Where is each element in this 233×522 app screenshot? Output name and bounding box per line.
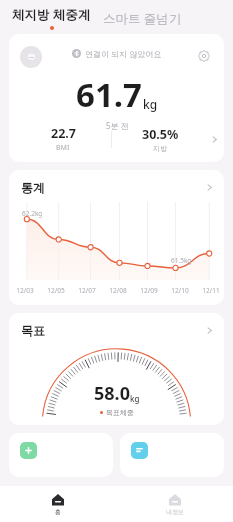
staticText: 22.7 xyxy=(51,125,76,142)
button[interactable]: Profile xyxy=(20,46,42,68)
staticText: 목표 xyxy=(21,323,45,338)
staticText: 12/07 xyxy=(78,286,96,295)
staticText: 12/10 xyxy=(171,286,189,295)
staticText: 연결이 되지 않았어요 xyxy=(85,48,162,59)
button[interactable]: 22.7 xyxy=(15,125,111,153)
staticText: 12/03 xyxy=(16,286,34,295)
staticText: 30.5% xyxy=(142,126,179,143)
button[interactable]: Settings xyxy=(194,46,214,66)
button[interactable]: Profile xyxy=(9,34,224,162)
staticText: BMI xyxy=(56,143,70,153)
button[interactable]: 체지방 체중계 xyxy=(12,6,91,23)
staticText: 61.5kg xyxy=(171,256,192,265)
staticText: 5분 전 xyxy=(106,120,129,131)
staticText: kg xyxy=(130,393,140,404)
button[interactable]: 스마트 줄넘기 xyxy=(103,10,182,27)
button[interactable]: My xyxy=(116,486,233,522)
staticText: 내정보 xyxy=(166,508,184,516)
button[interactable] xyxy=(9,433,113,477)
staticText: 목표체중 xyxy=(106,408,134,417)
button[interactable] xyxy=(120,433,224,477)
staticText: 홈 xyxy=(55,508,61,516)
staticText: kg xyxy=(143,96,158,112)
button[interactable]: 목표 xyxy=(9,313,224,425)
staticText: 61.7 xyxy=(76,72,142,117)
staticText: 12/05 xyxy=(47,286,65,295)
staticText: 12/09 xyxy=(140,286,158,295)
button[interactable]: 30.5% xyxy=(112,126,208,153)
staticText: 지방 xyxy=(153,144,167,153)
staticText: 12/11 xyxy=(202,286,220,295)
button[interactable]: Home xyxy=(0,486,116,522)
staticText: 12/08 xyxy=(109,286,127,295)
staticText: 통계 xyxy=(21,180,45,195)
staticText: 58.0 xyxy=(94,381,130,406)
staticText: 62.2kg xyxy=(22,209,43,218)
button[interactable]: 통계 xyxy=(9,170,224,305)
